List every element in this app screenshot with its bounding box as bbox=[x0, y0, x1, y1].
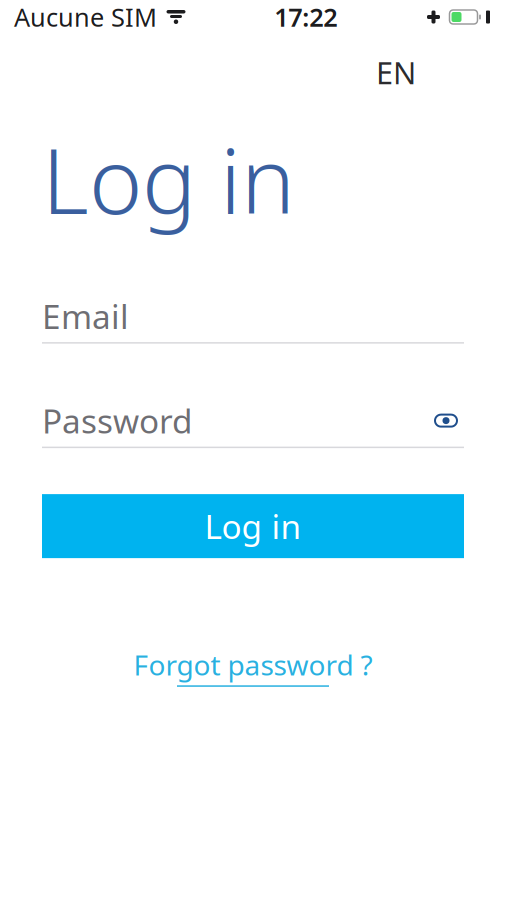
staticText: Password bbox=[42, 398, 193, 443]
button[interactable]: Log in bbox=[42, 494, 464, 558]
staticText: EN bbox=[376, 52, 416, 93]
button[interactable]: Show password bbox=[428, 407, 464, 435]
staticText: Log in bbox=[204, 504, 301, 548]
staticText: Email bbox=[42, 294, 129, 338]
staticText: Log in bbox=[42, 119, 295, 239]
staticText: Forgot password ? bbox=[133, 646, 372, 683]
button[interactable]: EN bbox=[362, 44, 430, 101]
staticText: 17:22 bbox=[274, 0, 337, 34]
button[interactable]: Forgot password ? bbox=[121, 640, 384, 693]
staticText: Aucune SIM bbox=[14, 0, 157, 34]
